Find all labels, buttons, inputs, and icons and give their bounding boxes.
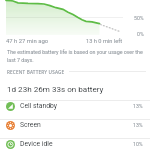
staticText: Cell standby	[20, 102, 58, 110]
staticText: The estimated battery life is based on y…	[7, 49, 145, 63]
other: Device idle	[6, 140, 15, 149]
button[interactable]: Cell standby	[0, 97, 150, 115]
staticText: 0%	[137, 31, 144, 37]
button[interactable]: Screen	[0, 116, 150, 134]
staticText: 47 h 27 min ago	[6, 38, 49, 45]
other: Screen	[6, 121, 15, 130]
staticText: 50%	[134, 15, 144, 21]
staticText: 13 h 0 min left	[86, 38, 123, 45]
button[interactable]: 1d 23h 26m 33s on battery	[0, 79, 150, 97]
staticText: 10%	[133, 141, 143, 147]
staticText: Device idle	[20, 140, 53, 148]
staticText: RECENT BATTERY USAGE	[7, 69, 65, 75]
other: Cell standby	[6, 102, 15, 111]
staticText: 13%	[133, 122, 143, 128]
staticText: 1d 23h 26m 33s on battery	[7, 84, 104, 93]
button[interactable]: Device idle	[0, 135, 150, 150]
staticText: 13%	[133, 103, 143, 109]
staticText: Screen	[20, 121, 41, 129]
